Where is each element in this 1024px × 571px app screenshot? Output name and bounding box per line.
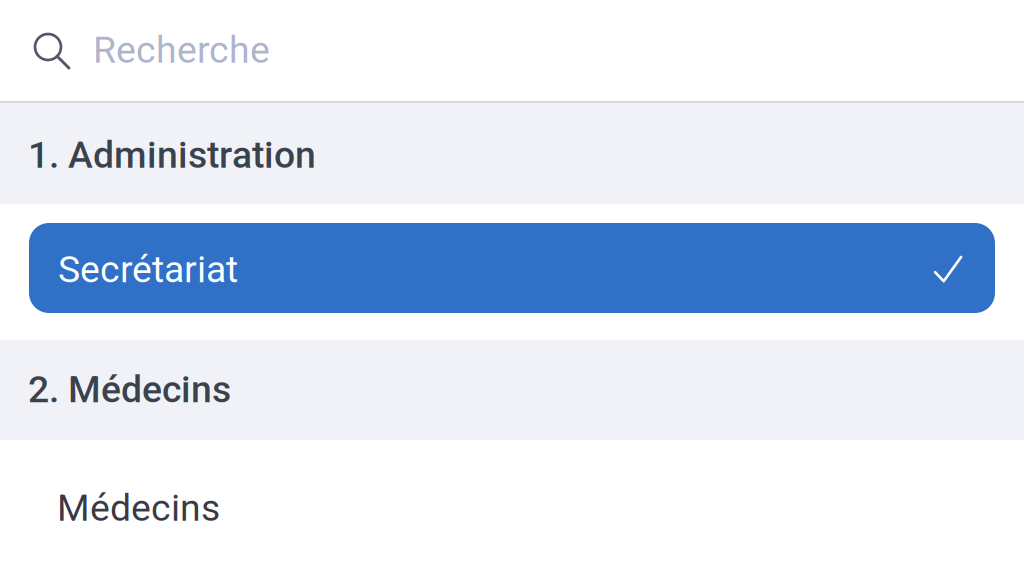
- staticText: Secrétariat: [58, 248, 238, 291]
- button[interactable]: Médecins: [0, 440, 1024, 571]
- staticText: Médecins: [57, 486, 220, 530]
- button[interactable]: Secrétariat: [0, 204, 1024, 340]
- staticText: 2. Médecins: [28, 368, 231, 411]
- button[interactable]: Recherche: [0, 0, 1024, 101]
- staticText: Recherche: [93, 28, 270, 72]
- staticText: 1. Administration: [28, 133, 316, 177]
